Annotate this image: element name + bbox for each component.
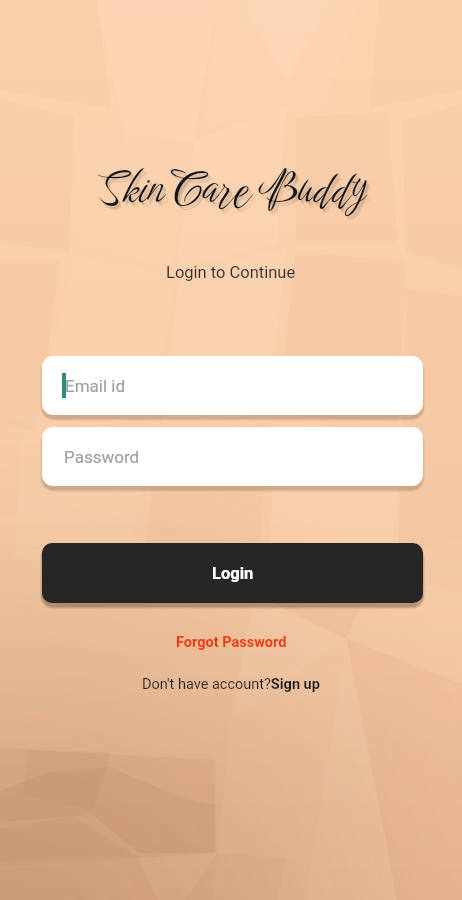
staticText: Login to Continue bbox=[166, 263, 296, 282]
staticText: Forgot Password bbox=[176, 634, 287, 651]
button[interactable]: Forgot Password bbox=[168, 631, 295, 654]
staticText: Don't have account?Sign up bbox=[142, 676, 320, 693]
staticText: Skin Care Buddy bbox=[100, 161, 367, 222]
staticText: Login bbox=[212, 564, 254, 583]
button[interactable]: Login bbox=[42, 543, 423, 603]
button[interactable]: Don't have account?Sign up bbox=[134, 673, 328, 696]
staticText: Email id bbox=[65, 376, 126, 396]
staticText: Password bbox=[64, 447, 140, 467]
staticText: Skin Care Buddy bbox=[101, 163, 368, 224]
staticText: Skin Care Buddy bbox=[98, 159, 365, 220]
